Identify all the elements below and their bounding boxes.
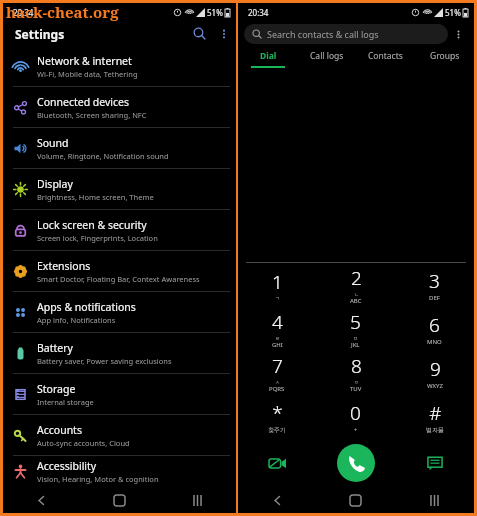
- staticText: Smart Doctor, Floating Bar, Context Awar…: [37, 274, 200, 284]
- button[interactable]: 3: [395, 263, 474, 307]
- button[interactable]: 9: [395, 351, 474, 395]
- staticText: Accessibility: [37, 459, 97, 473]
- staticText: Accounts: [37, 423, 82, 437]
- button[interactable]: *: [238, 395, 316, 439]
- button[interactable]: Call logs: [297, 47, 356, 71]
- staticText: 3: [429, 268, 440, 294]
- staticText: Connected devices: [37, 95, 130, 109]
- button[interactable]: Extensions: [3, 251, 236, 291]
- staticText: Vision, Hearing, Motor & cognition: [37, 474, 159, 484]
- staticText: 20:34: [248, 7, 269, 18]
- button[interactable]: Message: [395, 439, 474, 487]
- button[interactable]: Contacts: [356, 47, 415, 71]
- staticText: Wi-Fi, Mobile data, Tethering: [37, 69, 138, 79]
- staticText: 9: [430, 356, 441, 382]
- button[interactable]: 1: [238, 263, 316, 307]
- staticText: Battery: [37, 341, 73, 355]
- button[interactable]: Search contacts & call logs: [244, 24, 448, 44]
- staticText: ㄱ: [275, 295, 280, 301]
- button[interactable]: Back: [238, 487, 316, 513]
- staticText: 2: [351, 265, 362, 291]
- staticText: Storage: [37, 382, 76, 396]
- button[interactable]: Accounts: [3, 415, 236, 455]
- staticText: ㅁ: [353, 335, 358, 341]
- staticText: 7: [272, 353, 283, 379]
- staticText: Call logs: [310, 50, 344, 62]
- staticText: 찾주기: [268, 426, 286, 434]
- staticText: 1: [272, 269, 283, 295]
- button[interactable]: 7: [238, 351, 316, 395]
- staticText: 20:34: [13, 7, 34, 18]
- staticText: App info, Notifications: [37, 315, 116, 325]
- staticText: GHI: [272, 341, 283, 349]
- staticText: Auto-sync accounts, Cloud: [37, 438, 130, 448]
- button[interactable]: #: [395, 395, 474, 439]
- button[interactable]: Sound: [3, 128, 236, 168]
- staticText: 8: [351, 353, 362, 379]
- staticText: +: [354, 426, 358, 434]
- button[interactable]: Storage: [3, 374, 236, 414]
- button[interactable]: 5: [316, 307, 395, 351]
- staticText: ㄹ: [275, 335, 280, 341]
- staticText: ABC: [350, 297, 362, 305]
- button[interactable]: Home: [316, 487, 395, 513]
- staticText: PQRS: [269, 385, 285, 393]
- staticText: 4: [272, 309, 283, 335]
- button[interactable]: Lock screen & security: [3, 210, 236, 250]
- button[interactable]: Dial: [238, 47, 297, 71]
- staticText: WXYZ: [427, 382, 443, 390]
- button[interactable]: Network & internet: [3, 46, 236, 86]
- staticText: Brightness, Home screen, Theme: [37, 192, 154, 202]
- button[interactable]: Video call: [238, 439, 316, 487]
- staticText: *: [272, 400, 283, 426]
- staticText: Network & internet: [37, 54, 132, 68]
- button[interactable]: Apps & notifications: [3, 292, 236, 332]
- button[interactable]: Recents: [158, 487, 236, 513]
- staticText: Search contacts & call logs: [267, 28, 379, 40]
- staticText: Settings: [15, 26, 186, 42]
- button[interactable]: Home: [80, 487, 158, 513]
- button[interactable]: Groups: [415, 47, 474, 71]
- staticText: Internal storage: [37, 397, 94, 407]
- button[interactable]: Accessibility: [3, 456, 236, 487]
- button[interactable]: Search: [186, 21, 212, 46]
- button[interactable]: Display: [3, 169, 236, 209]
- staticText: Bluetooth, Screen sharing, NFC: [37, 110, 147, 120]
- staticText: ㅅ: [275, 379, 280, 385]
- staticText: Dial: [260, 50, 277, 62]
- staticText: Groups: [430, 50, 460, 62]
- staticText: Screen lock, Fingerprints, Location: [37, 233, 158, 243]
- staticText: 51%: [445, 7, 461, 18]
- staticText: MNO: [427, 338, 442, 346]
- button[interactable]: 4: [238, 307, 316, 351]
- button[interactable]: Connected devices: [3, 87, 236, 127]
- button[interactable]: Call: [337, 444, 375, 482]
- staticText: Apps & notifications: [37, 300, 136, 314]
- button[interactable]: Back: [3, 487, 80, 513]
- staticText: Display: [37, 177, 73, 191]
- staticText: ㅇ: [354, 379, 359, 385]
- button[interactable]: More options: [448, 24, 468, 44]
- button[interactable]: 6: [395, 307, 474, 351]
- button[interactable]: Recents: [395, 487, 474, 513]
- button[interactable]: 0: [316, 395, 395, 439]
- staticText: 별자물: [426, 426, 444, 434]
- staticText: JKL: [351, 341, 360, 349]
- staticText: Extensions: [37, 259, 91, 273]
- staticText: 5: [350, 309, 361, 335]
- staticText: DEF: [429, 294, 440, 302]
- staticText: 0: [350, 400, 361, 426]
- staticText: Contacts: [368, 50, 403, 62]
- button[interactable]: More options: [212, 22, 236, 46]
- button[interactable]: Battery: [3, 333, 236, 373]
- staticText: 6: [429, 312, 440, 338]
- button[interactable]: 8: [316, 351, 395, 395]
- staticText: #: [429, 400, 442, 426]
- staticText: Lock screen & security: [37, 218, 147, 232]
- staticText: ㄴ: [354, 291, 359, 297]
- button[interactable]: 2: [316, 263, 395, 307]
- staticText: 51%: [207, 7, 223, 18]
- staticText: Volume, Ringtone, Notification sound: [37, 151, 169, 161]
- staticText: hack-cheat.org: [6, 2, 119, 22]
- staticText: Battery saver, Power saving exclusions: [37, 356, 172, 366]
